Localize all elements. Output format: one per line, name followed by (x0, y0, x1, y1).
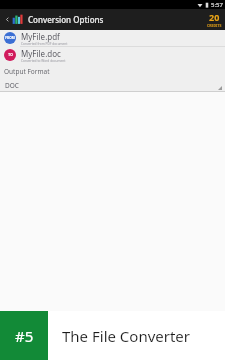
staticText: 20 (209, 11, 220, 23)
button[interactable]: FROM (0, 30, 225, 46)
button[interactable]: #5 (0, 311, 48, 360)
staticText: 5:57 (211, 1, 223, 9)
staticText: #5 (15, 326, 34, 346)
staticText: MyFile.doc (21, 48, 61, 59)
staticText: FROM (5, 36, 15, 40)
button[interactable]: DOC (0, 79, 225, 92)
staticText: DOC (5, 81, 19, 90)
staticText: CREDITS (207, 23, 222, 28)
button[interactable]: 20 (206, 11, 222, 28)
staticText: The File Converter (62, 326, 191, 346)
staticText: Converted to Word document (21, 59, 66, 63)
staticText: MyFile.pdf (21, 31, 60, 42)
button[interactable]: TO (0, 47, 225, 63)
staticText: Converted from PDF document (21, 42, 68, 46)
staticText: TO (8, 53, 13, 57)
button[interactable]: Back (3, 9, 12, 30)
staticText: Output Format (4, 67, 50, 76)
staticText: Conversion Options (28, 14, 104, 25)
